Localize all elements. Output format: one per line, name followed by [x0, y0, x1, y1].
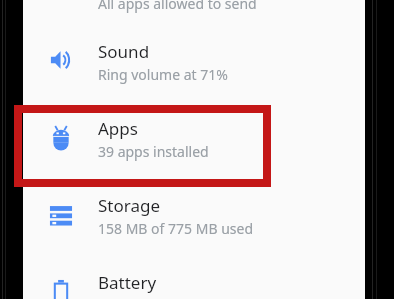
button[interactable]: Sound	[23, 38, 365, 98]
other: Battery	[23, 269, 98, 299]
other: Apps	[23, 115, 98, 175]
button[interactable]: Apps	[23, 115, 365, 175]
staticText: 39 apps installed	[98, 142, 209, 161]
other: Sound	[23, 38, 98, 98]
staticText: Battery	[98, 271, 157, 294]
staticText: 158 MB of 775 MB used	[98, 219, 253, 238]
staticText: Sound	[98, 40, 150, 63]
other: Storage	[23, 192, 98, 252]
staticText: Apps	[98, 117, 138, 140]
staticText: Storage	[98, 194, 161, 217]
button[interactable]: Battery	[23, 269, 365, 299]
staticText: Ring volume at 71%	[98, 65, 228, 84]
staticText: All apps allowed to send	[98, 0, 257, 13]
button[interactable]: Storage	[23, 192, 365, 252]
